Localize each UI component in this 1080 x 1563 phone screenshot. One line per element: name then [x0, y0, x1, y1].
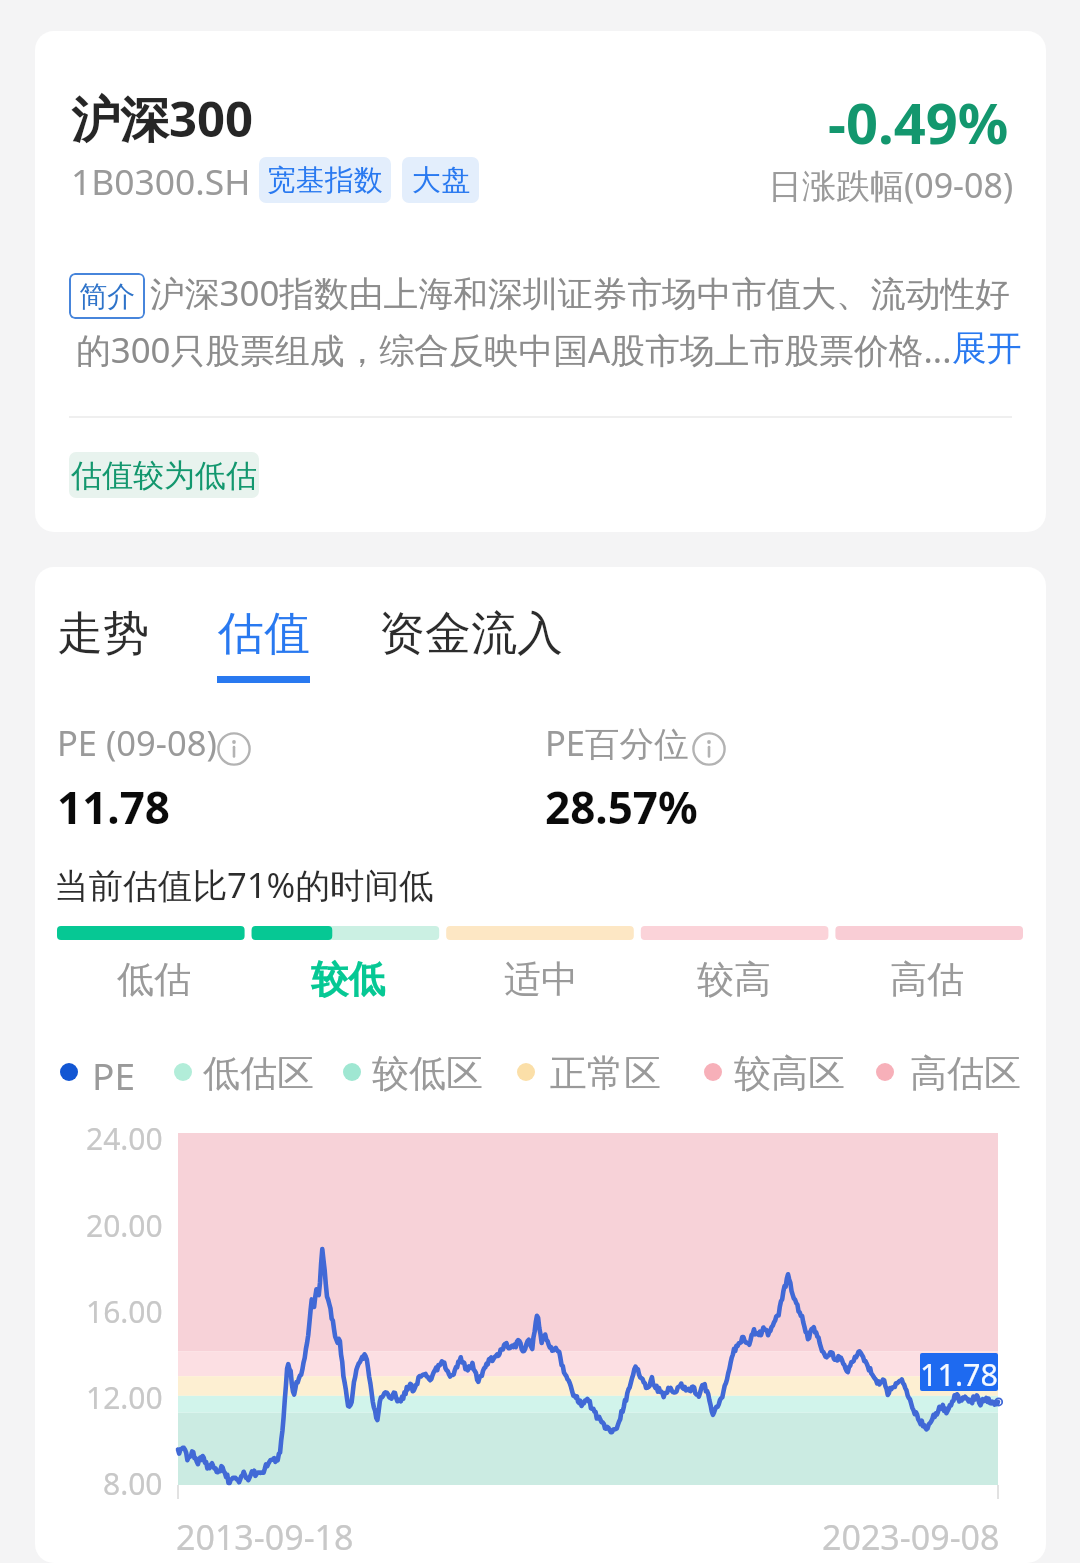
button[interactable]: 简介	[69, 273, 145, 319]
staticText: 较高区	[734, 1050, 845, 1096]
staticText: 11.78	[57, 777, 171, 837]
staticText: 正常区	[550, 1050, 661, 1096]
button[interactable]: 走势	[45, 597, 161, 684]
staticText: 适中	[504, 956, 578, 1003]
staticText: 2023-09-08	[822, 1514, 1000, 1560]
staticText: 低估	[117, 956, 191, 1003]
staticText: 沪深300	[71, 85, 254, 152]
staticText: 1B0300.SH	[71, 157, 251, 205]
staticText: -0.49%	[828, 84, 1009, 160]
staticText: 估值	[218, 605, 310, 663]
staticText: 20.00	[86, 1205, 163, 1246]
staticText: 12.00	[86, 1377, 163, 1418]
staticText: 8.00	[103, 1463, 163, 1504]
staticText: 沪深300指数由上海和深圳证券市场中市值大、流动性好	[150, 269, 1011, 317]
staticText: 日涨跌幅(09-08)	[768, 162, 1014, 208]
staticText: PE百分位	[545, 719, 689, 766]
staticText: 的300只股票组成，综合反映中国A股市场上市股票价格...	[76, 326, 952, 374]
button[interactable]: 估值较为低估	[69, 452, 259, 498]
staticText: 16.00	[86, 1291, 163, 1332]
button[interactable]: 宽基指数	[259, 157, 391, 203]
button[interactable]: 展开	[952, 326, 1022, 370]
staticText: PE (09-08)	[57, 719, 217, 766]
staticText: 高估	[890, 956, 964, 1003]
staticText: 简介	[79, 279, 135, 314]
staticText: 较低	[311, 956, 385, 1003]
staticText: PE	[92, 1050, 135, 1096]
staticText: 24.00	[86, 1118, 163, 1159]
staticText: 高估区	[910, 1050, 1021, 1096]
staticText: 2013-09-18	[176, 1514, 354, 1560]
button[interactable]: About PE percentile	[692, 732, 726, 766]
staticText: 估值较为低估	[71, 456, 257, 495]
staticText: 大盘	[412, 162, 470, 199]
staticText: 低估区	[203, 1050, 314, 1096]
staticText: 28.57%	[545, 777, 698, 837]
button[interactable]: 资金流入	[367, 597, 575, 684]
staticText: 较低区	[372, 1050, 483, 1096]
staticText: 走势	[57, 605, 149, 663]
staticText: 宽基指数	[267, 162, 383, 199]
staticText: 当前估值比71%的时间低	[54, 861, 434, 908]
staticText: 11.78	[920, 1353, 998, 1391]
button[interactable]: About PE	[217, 732, 251, 766]
staticText: 资金流入	[379, 605, 563, 663]
button[interactable]: 大盘	[402, 157, 479, 203]
staticText: 较高	[697, 956, 771, 1003]
button[interactable]: 估值	[205, 597, 322, 691]
